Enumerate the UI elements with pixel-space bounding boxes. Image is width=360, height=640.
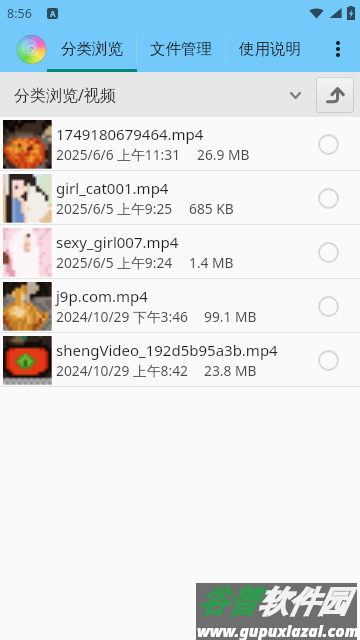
staticText: 1749180679464.mp4 bbox=[56, 124, 204, 144]
button[interactable]: sexy_girl007.mp4 bbox=[0, 225, 360, 278]
staticText: j9p.com.mp4 bbox=[56, 286, 148, 306]
button[interactable]: 1749180679464.mp4 bbox=[0, 117, 360, 170]
staticText: shengVideo_192d5b95a3b.mp4 bbox=[56, 340, 278, 360]
button[interactable]: Select file bbox=[308, 340, 348, 380]
staticText: 分类浏览 bbox=[61, 39, 123, 59]
staticText: 23.8 MB bbox=[204, 361, 257, 380]
button[interactable]: shengVideo_192d5b95a3b.mp4 bbox=[0, 333, 360, 386]
staticText: www.gupuxlazal.com bbox=[197, 620, 358, 640]
staticText: A bbox=[50, 8, 56, 19]
button[interactable]: More options bbox=[316, 26, 360, 72]
staticText: 文件管理 bbox=[150, 39, 212, 59]
staticText: 软件园 bbox=[258, 583, 348, 621]
staticText: 2024/10/29 下午3:46 bbox=[56, 307, 188, 326]
button[interactable]: j9p.com.mp4 bbox=[0, 279, 360, 332]
staticText: sexy_girl007.mp4 bbox=[56, 232, 179, 252]
button[interactable]: Select file bbox=[308, 178, 348, 218]
staticText: 分类浏览/视频 bbox=[14, 84, 116, 106]
button[interactable]: 分类浏览 bbox=[48, 26, 136, 72]
button[interactable]: Select file bbox=[308, 124, 348, 164]
staticText: 2025/6/5 上午9:24 bbox=[56, 253, 173, 272]
staticText: 685 KB bbox=[189, 199, 234, 218]
staticText: girl_cat001.mp4 bbox=[56, 178, 169, 198]
button[interactable]: girl_cat001.mp4 bbox=[0, 171, 360, 224]
staticText: 2025/6/6 上午11:31 bbox=[56, 145, 181, 164]
button[interactable]: Select file bbox=[308, 286, 348, 326]
staticText: 99.1 MB bbox=[204, 307, 257, 326]
staticText: 2024/10/29 上午8:42 bbox=[56, 361, 188, 380]
button[interactable]: 使用说明 bbox=[226, 26, 314, 72]
staticText: 8:56 bbox=[7, 5, 32, 22]
staticText: 使用说明 bbox=[239, 39, 301, 59]
button[interactable]: 文件管理 bbox=[137, 26, 225, 72]
staticText: 2025/6/5 上午9:25 bbox=[56, 199, 173, 218]
button[interactable]: Select file bbox=[308, 232, 348, 272]
staticText: 1.4 MB bbox=[189, 253, 234, 272]
staticText: 26.9 MB bbox=[197, 145, 250, 164]
button[interactable]: Up one level bbox=[316, 77, 354, 113]
button[interactable]: App logo bbox=[17, 35, 46, 64]
button[interactable]: Expand path bbox=[282, 82, 308, 108]
staticText: 谷普 bbox=[198, 583, 258, 621]
